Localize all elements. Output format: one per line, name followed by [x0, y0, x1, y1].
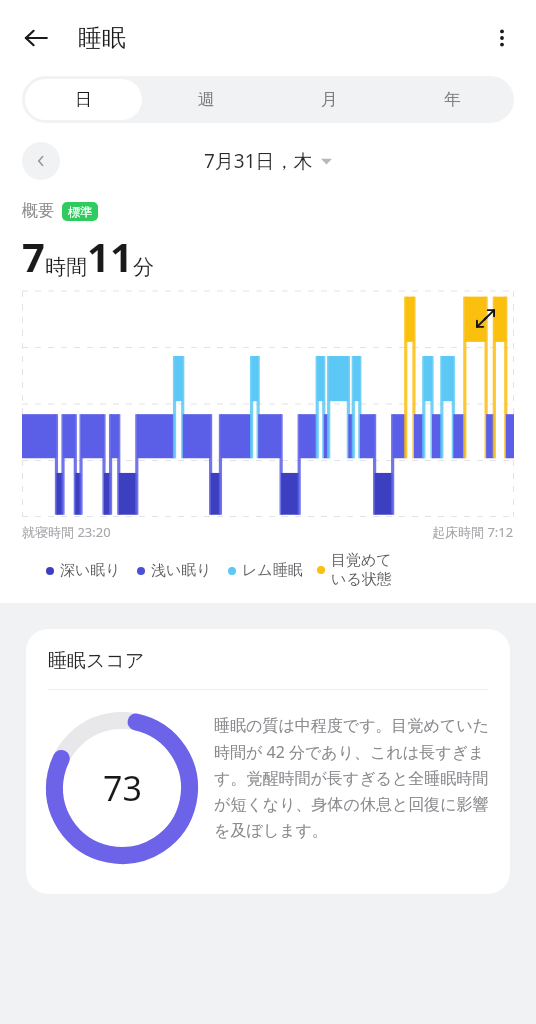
- staticText: レム睡眠: [242, 561, 303, 580]
- staticText: 就寝時間 23:20: [22, 523, 111, 541]
- staticText: 睡眠の質は中程度です。目覚めていた時間が 42 分であり、これは長すぎます。覚醒…: [214, 716, 492, 841]
- button[interactable]: 7月31日，木: [198, 144, 338, 178]
- staticText: 7月31日，木: [204, 148, 313, 174]
- staticText: 概要: [22, 201, 54, 221]
- staticText: 11: [87, 229, 133, 283]
- staticText: 深い眠り: [60, 561, 121, 580]
- button[interactable]: 月: [271, 79, 388, 120]
- button[interactable]: 週: [148, 79, 265, 120]
- staticText: 睡眠: [78, 23, 126, 53]
- staticText: 浅い眠り: [151, 561, 212, 580]
- staticText: 睡眠スコア: [48, 649, 145, 673]
- button[interactable]: 日: [25, 79, 142, 120]
- staticText: 73: [103, 765, 142, 811]
- button[interactable]: その他のオプション: [480, 16, 524, 60]
- button[interactable]: 全画面表示: [470, 303, 500, 333]
- staticText: 年: [444, 89, 461, 110]
- staticText: 起床時間 7:12: [432, 523, 514, 541]
- staticText: 7: [22, 229, 45, 283]
- staticText: 分: [133, 254, 154, 280]
- staticText: 日: [75, 89, 92, 110]
- staticText: 週: [198, 89, 215, 110]
- button[interactable]: 睡眠スコア: [26, 629, 510, 894]
- button[interactable]: 前の日: [22, 142, 60, 180]
- staticText: 標準: [68, 204, 92, 219]
- staticText: 時間: [45, 254, 87, 280]
- button[interactable]: 年: [394, 79, 511, 120]
- staticText: 月: [321, 89, 338, 110]
- staticText: 目覚めて いる状態: [331, 551, 392, 589]
- button[interactable]: 戻る: [14, 16, 58, 60]
